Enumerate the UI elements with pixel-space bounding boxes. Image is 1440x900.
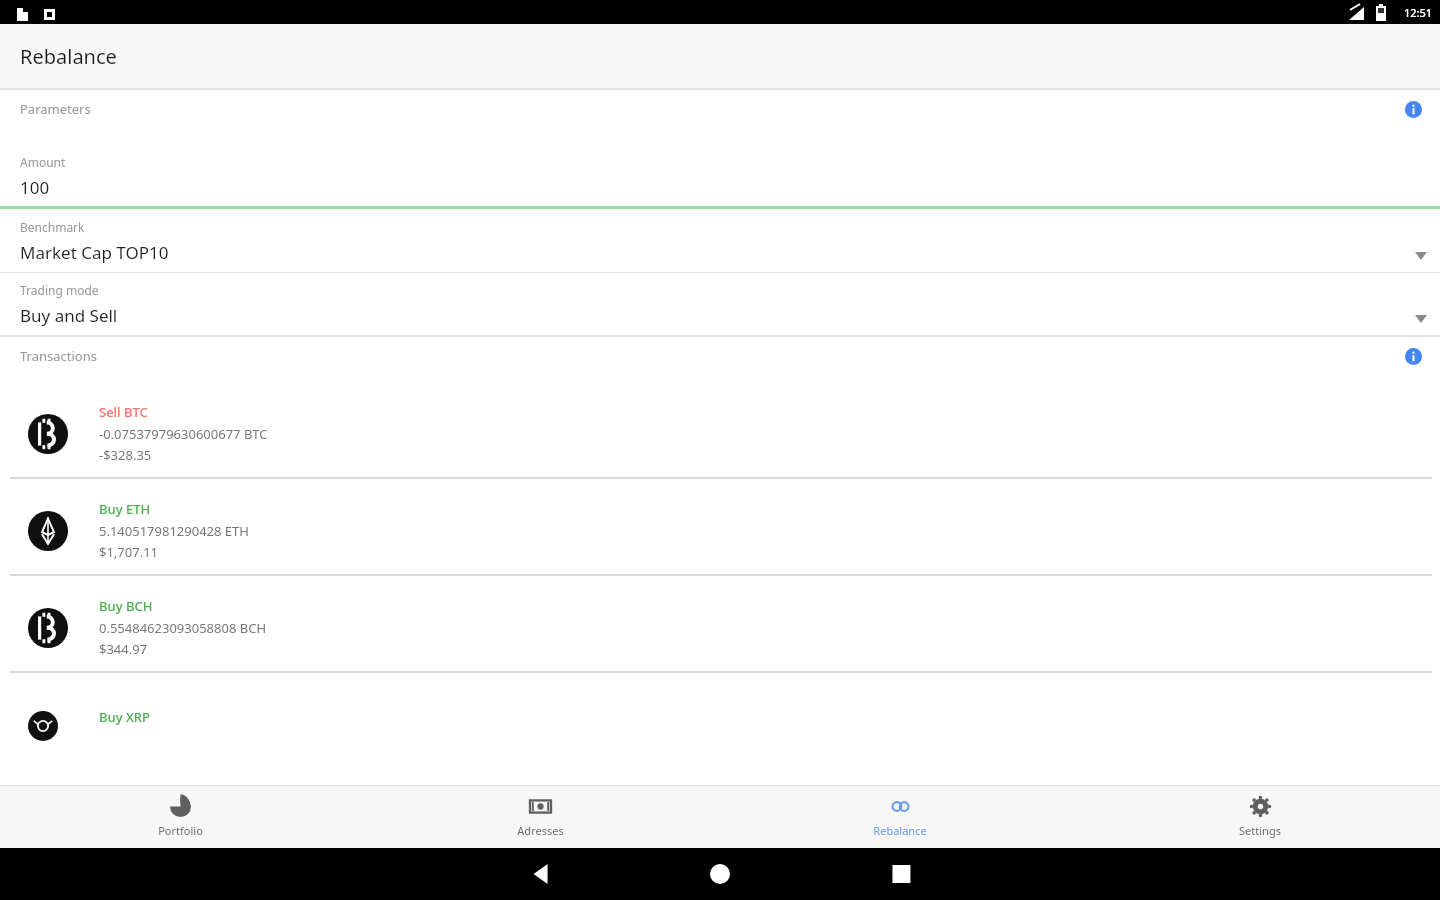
staticText: Portfolio <box>158 823 203 838</box>
staticText: Sell BTC <box>99 403 148 421</box>
staticText: Parameters <box>20 100 91 118</box>
button[interactable]: Amount <box>0 154 1440 209</box>
staticText: $344.97 <box>99 640 148 658</box>
button[interactable]: Portfolio <box>0 786 360 848</box>
staticText: Amount <box>20 154 66 170</box>
staticText: Market Cap TOP10 <box>20 241 169 264</box>
staticText: -0.07537979630600677 BTC <box>99 425 268 443</box>
staticText: Buy ETH <box>99 500 151 518</box>
button[interactable]: Information <box>1399 342 1427 370</box>
button[interactable]: Trading mode <box>0 282 1440 336</box>
staticText: Trading mode <box>20 282 99 298</box>
button[interactable]: Adresses <box>360 786 720 848</box>
staticText: Buy XRP <box>99 708 150 726</box>
staticText: Rebalance <box>873 823 927 838</box>
button[interactable]: Information <box>1399 95 1427 123</box>
staticText: 5.140517981290428 ETH <box>99 522 249 540</box>
staticText: Settings <box>1239 823 1281 838</box>
staticText: 0.55484623093058808 BCH <box>99 619 267 637</box>
staticText: Transactions <box>20 347 97 365</box>
button[interactable]: Buy ETH <box>10 487 1432 574</box>
button[interactable]: Buy XRP <box>10 681 1432 741</box>
staticText: 12:51 <box>1404 5 1433 20</box>
staticText: -$328.35 <box>99 446 152 464</box>
staticText: 100 <box>20 176 50 199</box>
staticText: Adresses <box>517 823 564 838</box>
staticText: Buy BCH <box>99 597 153 615</box>
staticText: Buy and Sell <box>20 304 118 327</box>
staticText: $1,707.11 <box>99 543 159 561</box>
button[interactable]: Buy BCH <box>10 584 1432 671</box>
button[interactable]: Settings <box>1080 786 1440 848</box>
staticText: Benchmark <box>20 219 85 235</box>
button[interactable]: Benchmark <box>0 219 1440 273</box>
button[interactable]: Sell BTC <box>10 390 1432 477</box>
button[interactable]: Rebalance <box>720 786 1080 848</box>
staticText: Rebalance <box>20 43 117 70</box>
